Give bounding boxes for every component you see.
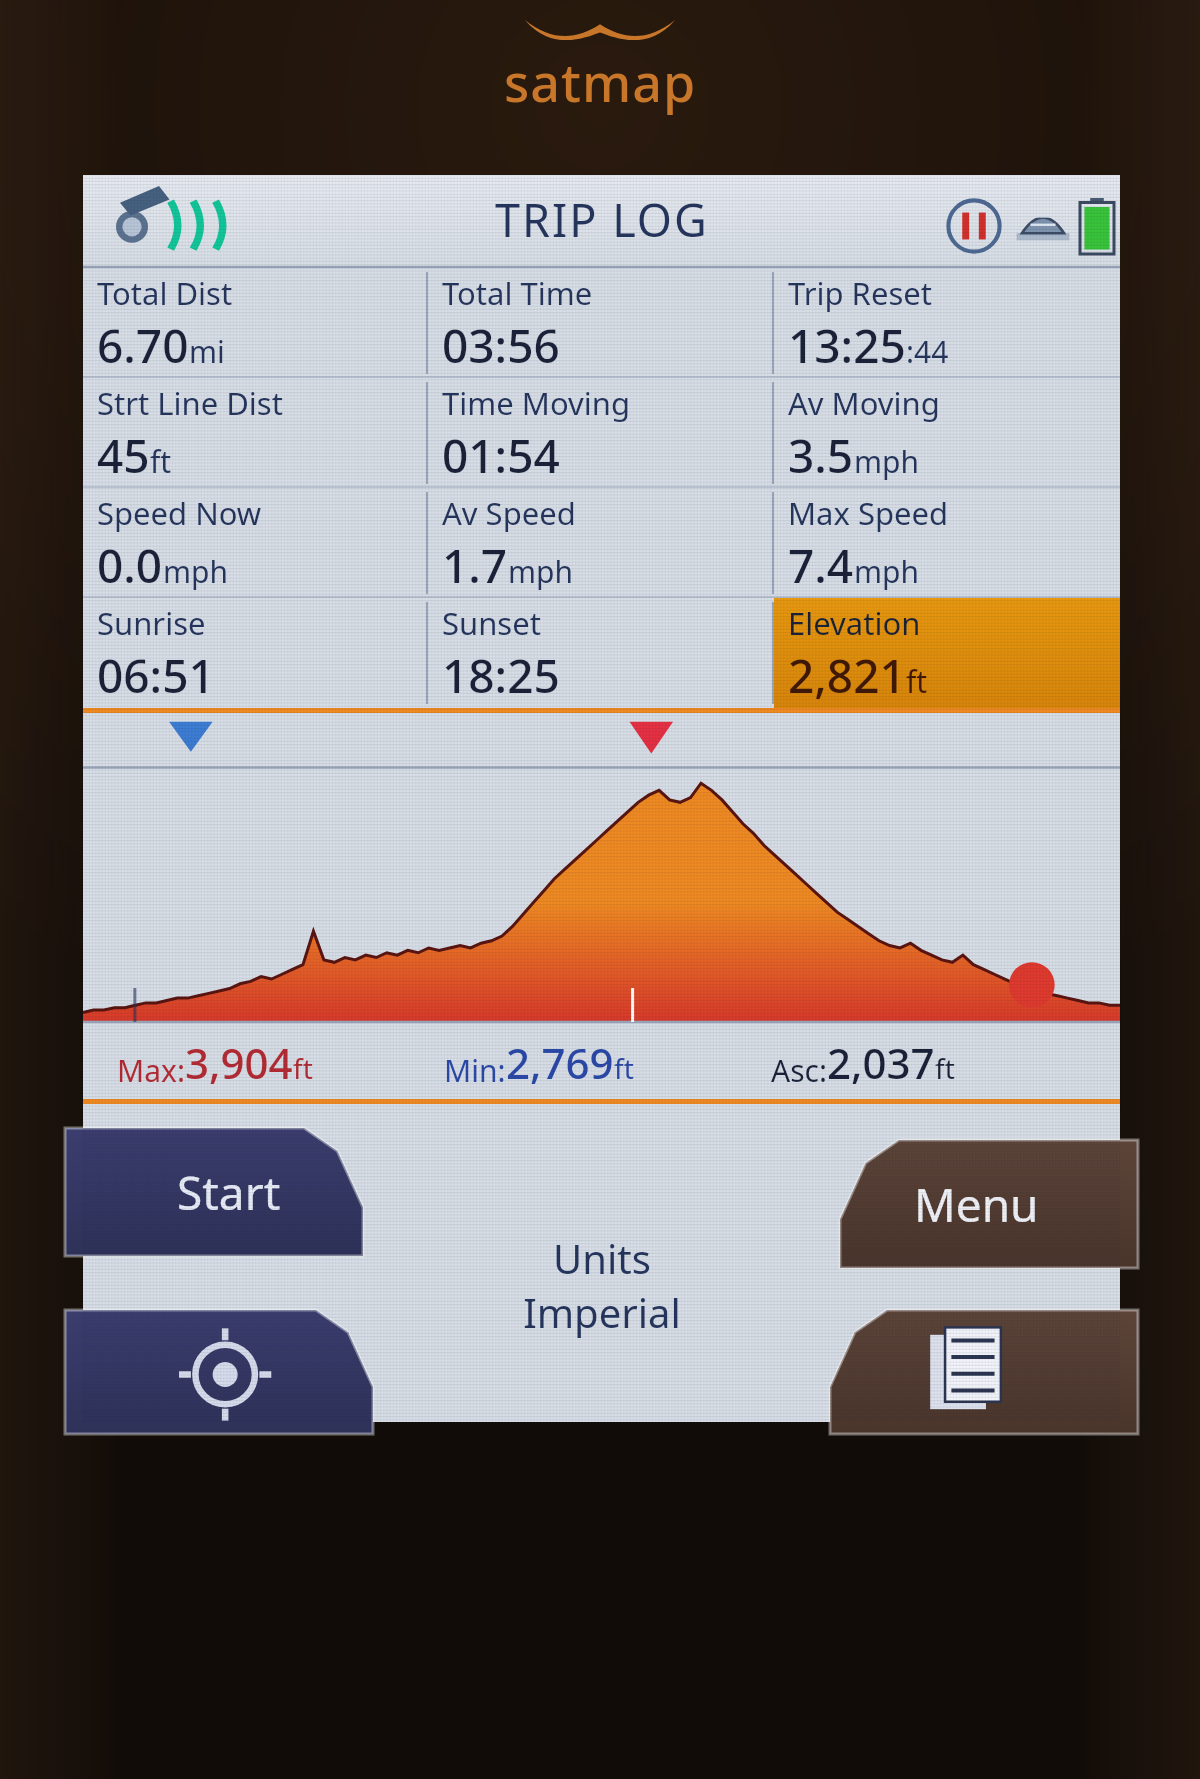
staticText: Av Moving [788,382,940,424]
staticText: 18:25 [442,644,560,707]
button[interactable]: Start [65,1128,363,1256]
staticText: mph [854,551,920,592]
staticText: Asc: [771,1050,827,1091]
button[interactable]: Max Speed [774,488,1120,598]
staticText: mi [189,331,225,372]
staticText: 03:56 [442,314,560,377]
button[interactable]: GPS signal [99,182,249,262]
staticText: Speed Now [97,492,262,534]
button[interactable]: Total Time [428,268,774,378]
staticText: Elevation [788,602,921,644]
button[interactable]: Elevation profile [83,713,1120,1025]
staticText: 2,821 [788,644,906,707]
staticText: Av Speed [442,492,576,534]
staticText: ft [614,1049,634,1087]
staticText: 1.7 [442,534,508,597]
staticText: Time Moving [442,382,630,424]
staticText: 01:54 [442,424,560,487]
staticText: 3.5 [788,424,854,487]
button[interactable]: Pause recording [942,194,1006,258]
button[interactable]: Speed Now [83,488,428,598]
button[interactable]: Av Moving [774,378,1120,488]
staticText: Total Dist [97,272,233,314]
staticText: 7.4 [788,534,854,597]
staticText: TRIP LOG [495,189,709,250]
staticText: Sunrise [97,602,206,644]
staticText: Max Speed [788,492,949,534]
staticText: Sunset [442,602,541,644]
staticText: Total Time [442,272,593,314]
button[interactable]: Max: [117,1034,444,1091]
button[interactable]: Elevation [774,598,1120,708]
button[interactable]: Time Moving [428,378,774,488]
button[interactable]: Strt Line Dist [83,378,428,488]
staticText: 3,904 [185,1034,293,1091]
staticText: 2,037 [827,1034,935,1091]
button[interactable]: Av Speed [428,488,774,598]
staticText: 06:51 [97,644,215,707]
button[interactable]: Centre on position [65,1310,373,1434]
button[interactable]: Trip log pages [830,1310,1138,1434]
staticText: 13:25 [788,314,906,377]
staticText: Strt Line Dist [97,382,283,424]
button[interactable]: Sunrise [83,598,428,708]
button[interactable]: Battery level [1080,198,1114,254]
button[interactable]: Asc: [771,1034,1098,1091]
staticText: Menu [914,1173,1039,1236]
staticText: mph [854,441,920,482]
staticText: 45 [97,424,150,487]
staticText: Trip Reset [788,272,932,314]
staticText: 6.70 [97,314,189,377]
staticText: mph [508,551,574,592]
staticText: satmap [504,46,697,117]
staticText: Max: [117,1050,185,1091]
button[interactable]: Min: [444,1034,771,1091]
button[interactable]: Sunset [428,598,774,708]
button[interactable]: Menu [840,1140,1138,1268]
staticText: 0.0 [97,534,163,597]
staticText: ft [293,1049,313,1087]
staticText: :44 [906,331,949,372]
staticText: Units [553,1231,651,1285]
button[interactable]: Trip Reset [774,268,1120,378]
staticText: ft [935,1049,955,1087]
staticText: mph [163,551,229,592]
staticText: ft [150,441,172,482]
button[interactable]: Total Dist [83,268,428,378]
staticText: Imperial [523,1285,681,1339]
staticText: Min: [444,1050,506,1091]
button[interactable]: Satellite status [1010,196,1076,256]
staticText: Start [177,1161,281,1224]
staticText: ft [906,661,928,702]
staticText: 2,769 [506,1034,614,1091]
